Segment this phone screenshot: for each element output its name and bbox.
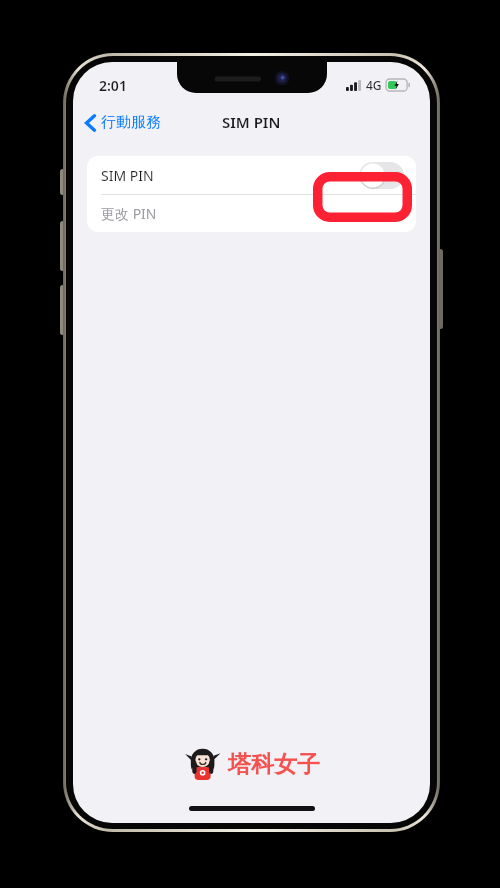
button[interactable]: SIM PIN [87, 156, 416, 194]
staticText: SIM PIN [222, 112, 281, 132]
staticText: 2:01 [99, 76, 127, 95]
staticText: 行動服務 [101, 113, 161, 132]
staticText: 更改 PIN [101, 204, 157, 223]
staticText: SIM PIN [101, 166, 359, 185]
button[interactable]: 更改 PIN [87, 195, 416, 232]
staticText: 塔科女子 [228, 750, 320, 779]
button[interactable]: 行動服務 [73, 109, 171, 136]
button[interactable]: SIM PIN toggle, off [359, 162, 404, 189]
staticText: 4G [366, 77, 382, 93]
